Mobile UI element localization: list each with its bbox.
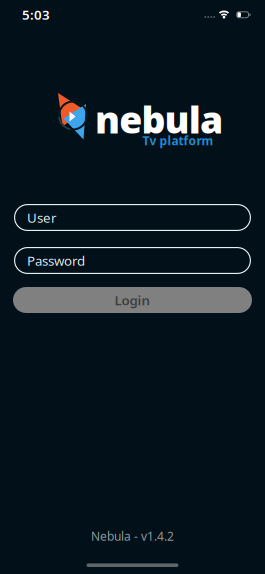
button[interactable]: Password [14, 247, 251, 274]
staticText: Nebula - v1.4.2 [91, 528, 174, 544]
button[interactable]: Login [13, 287, 252, 313]
staticText: Tv platform [142, 132, 213, 148]
button[interactable]: User [14, 204, 251, 231]
staticText: 5:03 [22, 6, 50, 23]
staticText: nebula [95, 94, 223, 144]
staticText: Password [27, 252, 85, 269]
staticText: Login [114, 291, 150, 309]
staticText: User [27, 209, 57, 226]
